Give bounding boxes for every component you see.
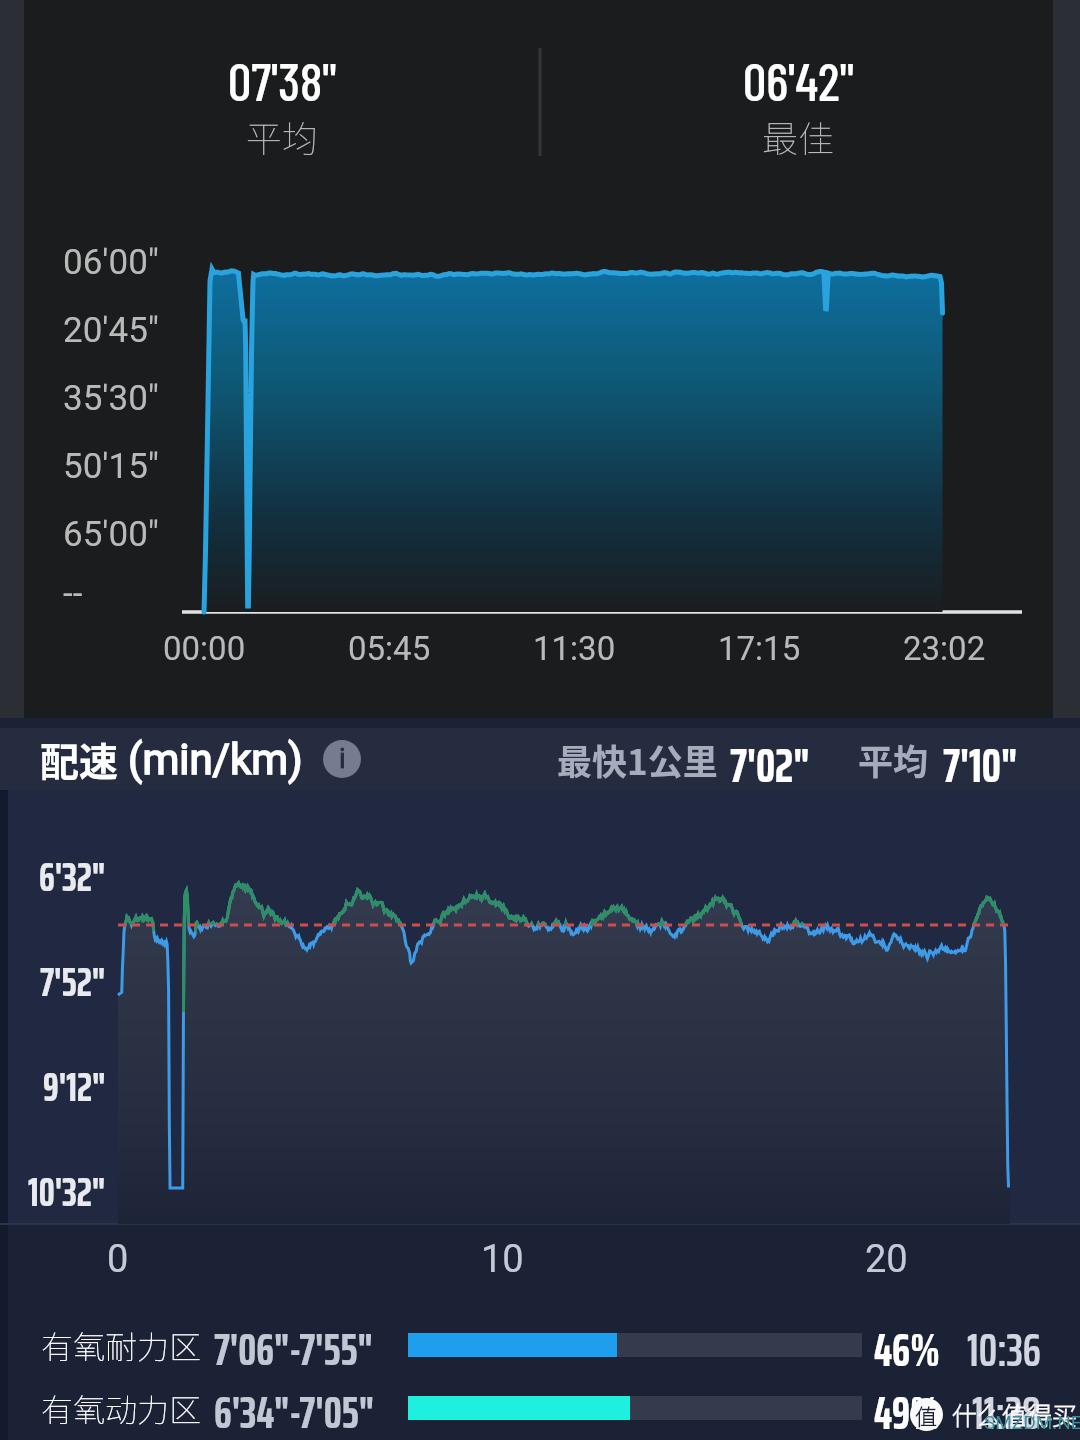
staticText: 有氧动力区 — [41, 1385, 202, 1431]
staticText: 7'02" — [730, 728, 810, 790]
staticText: 05:45 — [348, 629, 431, 668]
staticText: 23:02 — [903, 629, 986, 668]
staticText: 20 — [865, 1237, 908, 1282]
button[interactable]: 有氧动力区 — [0, 1377, 1080, 1439]
staticText: 10'32" — [28, 1161, 106, 1224]
staticText: 有氧耐力区 — [41, 1322, 202, 1368]
staticText: 46% — [874, 1314, 941, 1376]
staticText: 7'52" — [40, 951, 106, 1014]
staticText: 平均 — [858, 734, 929, 785]
staticText: 07'38" — [228, 49, 337, 111]
staticText: 0 — [107, 1237, 129, 1282]
staticText: 配速 — [40, 731, 119, 787]
staticText: 11:30 — [533, 629, 616, 668]
staticText: 7'06"-7'55" — [214, 1314, 373, 1376]
staticText: 65'00" — [63, 514, 160, 555]
button[interactable]: 07'38" — [22, 0, 542, 180]
staticText: 49% — [874, 1377, 941, 1439]
staticText: 20'45" — [63, 310, 160, 351]
button[interactable]: 06'42" — [538, 0, 1058, 180]
staticText: 50'15" — [63, 446, 160, 487]
staticText: 11:28 — [972, 1377, 1041, 1439]
staticText: i — [339, 743, 346, 775]
staticText: 值 — [915, 1399, 938, 1431]
staticText: 平均 — [246, 110, 319, 162]
staticText: (min/km) — [128, 735, 303, 784]
staticText: 10:36 — [967, 1314, 1041, 1376]
staticText: 9'12" — [43, 1056, 106, 1119]
staticText: -- — [63, 573, 83, 614]
staticText: 10 — [481, 1237, 524, 1282]
staticText: 什么值得买 — [952, 1396, 1078, 1432]
staticText: 06'42" — [743, 49, 854, 111]
staticText: 6'32" — [39, 846, 106, 909]
button[interactable]: Info — [323, 740, 361, 778]
staticText: 最佳 — [762, 110, 835, 162]
staticText: 06'00" — [63, 242, 160, 283]
staticText: SMZDM.NET — [984, 1411, 1080, 1433]
button[interactable]: 有氧耐力区 — [0, 1314, 1080, 1376]
staticText: 35'30" — [63, 378, 160, 419]
staticText: 00:00 — [163, 629, 246, 668]
staticText: 17:15 — [718, 629, 801, 668]
staticText: 6'34"-7'05" — [214, 1377, 374, 1439]
staticText: 最快1公里 — [557, 734, 718, 785]
staticText: 7'10" — [943, 728, 1018, 790]
